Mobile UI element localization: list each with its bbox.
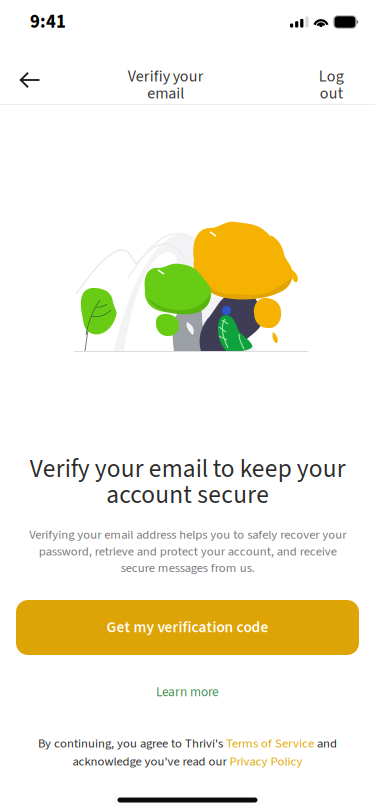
- staticText: By continuing, you agree to Thrivi's: [38, 734, 226, 752]
- staticText: Learn more: [156, 682, 219, 701]
- staticText: Terms of Service: [226, 734, 314, 752]
- staticText: Verify your email to keep your account s…: [29, 456, 345, 508]
- staticText: 9:41: [30, 9, 66, 35]
- staticText: Privacy Policy: [229, 752, 302, 770]
- button[interactable]: Terms of Service: [226, 734, 314, 752]
- button[interactable]: Log out: [308, 58, 354, 112]
- staticText: and: [314, 734, 337, 752]
- button[interactable]: Learn more: [150, 676, 225, 707]
- button[interactable]: Back: [6, 56, 54, 104]
- button[interactable]: Get my verification code: [16, 600, 359, 655]
- staticText: Verifiy your email: [127, 68, 203, 102]
- staticText: Verifying your email address helps you t…: [29, 527, 346, 576]
- button[interactable]: Privacy Policy: [229, 752, 302, 770]
- staticText: acknowledge you've read our: [72, 752, 229, 770]
- staticText: Get my verification code: [106, 617, 268, 638]
- staticText: Log out: [318, 68, 343, 102]
